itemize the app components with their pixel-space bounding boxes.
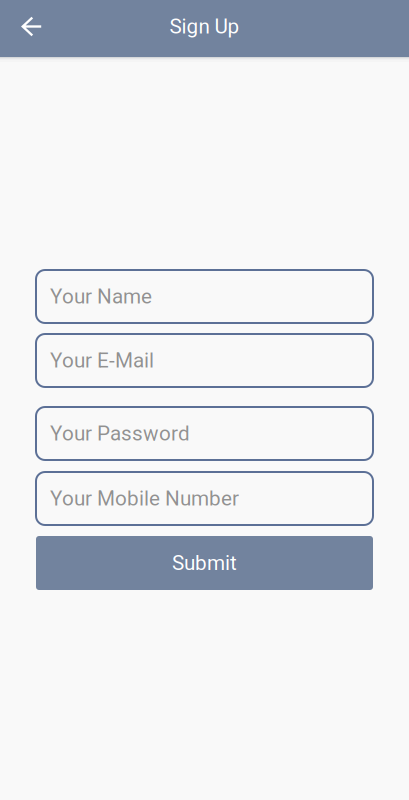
- staticText: Your Name: [50, 284, 152, 309]
- button[interactable]: Submit: [36, 536, 373, 590]
- button[interactable]: Your Name: [36, 270, 373, 323]
- button[interactable]: Back: [0, 0, 64, 53]
- button[interactable]: Your E-Mail: [36, 334, 373, 387]
- button[interactable]: Your Password: [36, 407, 373, 460]
- staticText: Your Password: [50, 421, 190, 446]
- staticText: Sign Up: [169, 14, 239, 39]
- staticText: Submit: [172, 551, 237, 575]
- staticText: Your Mobile Number: [50, 486, 239, 511]
- staticText: Your E-Mail: [50, 348, 154, 373]
- button[interactable]: Your Mobile Number: [36, 472, 373, 525]
